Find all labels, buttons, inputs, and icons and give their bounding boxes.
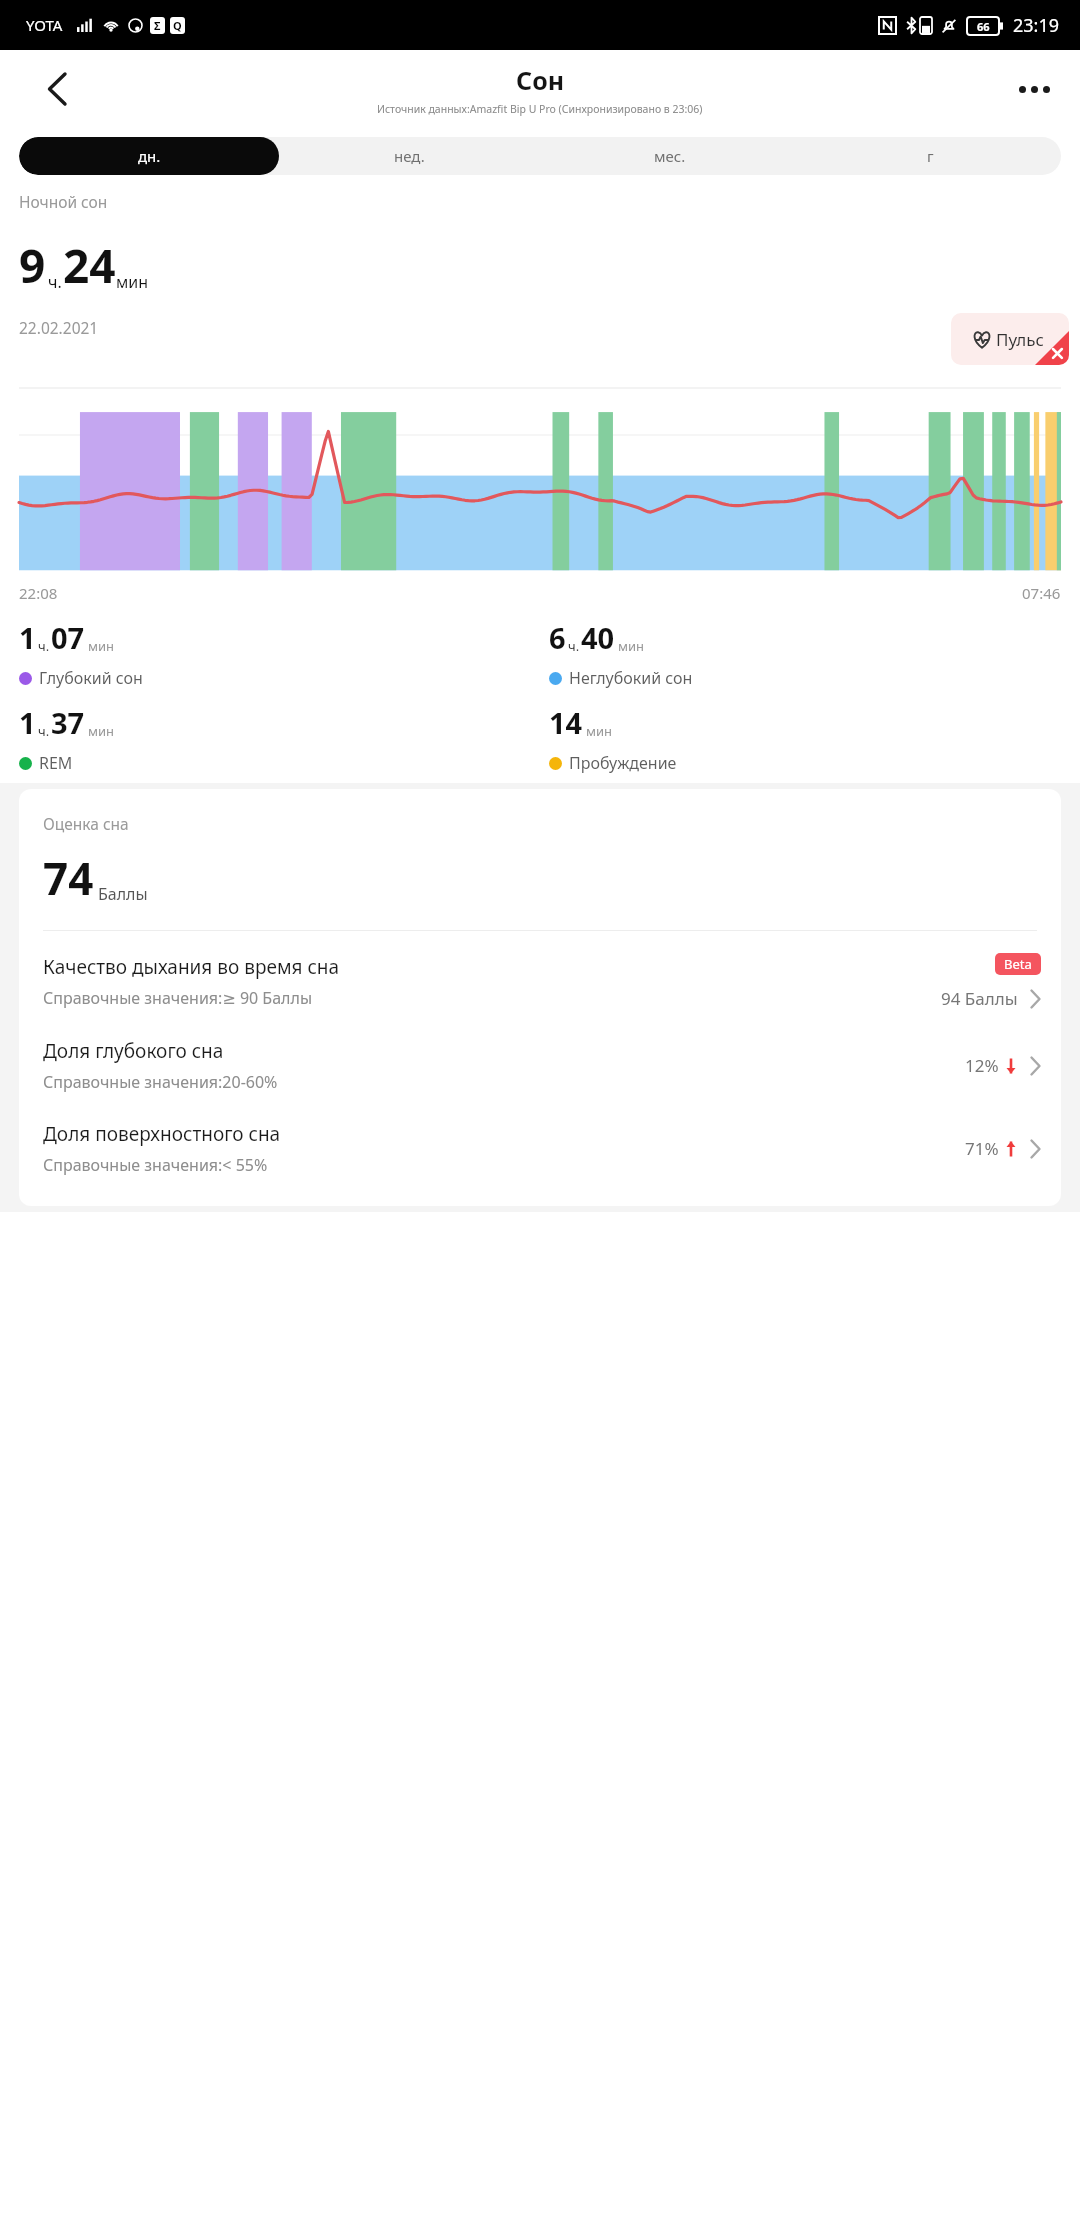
staticText: нед. [394,146,425,166]
staticText: 6 [549,618,566,657]
staticText: Справочные значения:≥ 90 Баллы [43,987,313,1009]
staticText: Пульс [996,328,1044,351]
staticText: Доля поверхностного сна [43,1121,281,1147]
staticText: 24 [63,234,116,297]
staticText: Ночной сон [19,191,108,212]
staticText: мин [88,722,115,740]
staticText: ч. [38,722,50,740]
staticText: г [927,146,934,166]
staticText: 40 [581,618,615,657]
staticText: REM [39,752,73,774]
staticText: Глубокий сон [39,667,143,689]
staticText: Справочные значения:< 55% [43,1154,268,1176]
staticText: 1 [19,703,36,742]
staticText: 23:19 [1013,13,1060,38]
staticText: Пробуждение [569,752,677,774]
button[interactable]: More options [1010,65,1058,113]
staticText: Beta [1004,955,1032,973]
button[interactable]: Доля глубокого сна [19,1016,1061,1099]
staticText: Неглубокий сон [569,667,693,689]
staticText: Справочные значения:20-60% [43,1071,278,1093]
staticText: дн. [138,146,161,166]
staticText: 14 [549,703,583,742]
staticText: 07:46 [1022,583,1061,603]
staticText: 22:08 [19,583,58,603]
staticText: мин [618,637,645,655]
button[interactable]: нед. [279,137,539,175]
staticText: ч. [48,271,62,293]
staticText: 22.02.2021 [19,317,99,338]
staticText: 74 [43,848,94,908]
staticText: мес. [654,146,686,166]
staticText: ч. [568,637,580,655]
staticText: 9 [19,234,46,297]
staticText: Оценка сна [43,813,129,834]
button[interactable]: дн. [19,137,279,175]
staticText: 94 Баллы [941,987,1018,1010]
staticText: 12% [965,1054,999,1077]
staticText: ч. [38,637,50,655]
staticText: Σ [154,18,161,33]
staticText: Источник данных:Amazfit Bip U Pro (Синхр… [377,102,703,116]
staticText: мин [116,271,149,293]
staticText: 07 [51,618,85,657]
staticText: Качество дыхания во время сна [43,954,340,980]
staticText: Баллы [98,883,148,905]
staticText: 1 [19,618,36,657]
staticText: 66 [977,19,990,34]
staticText: YOTA [26,15,63,35]
staticText: 71% [965,1137,999,1160]
button[interactable]: Качество дыхания во время сна [19,931,1061,1016]
staticText: мин [586,722,613,740]
button[interactable]: мес. [539,137,800,175]
staticText: Q [173,18,182,33]
button[interactable]: г [800,137,1061,175]
staticText: Доля глубокого сна [43,1038,224,1064]
button[interactable]: Back [34,67,78,111]
button[interactable]: Доля поверхностного сна [19,1099,1061,1182]
button[interactable]: Пульс [951,313,1069,365]
staticText: Сон [516,63,565,97]
staticText: 37 [51,703,85,742]
staticText: мин [88,637,115,655]
